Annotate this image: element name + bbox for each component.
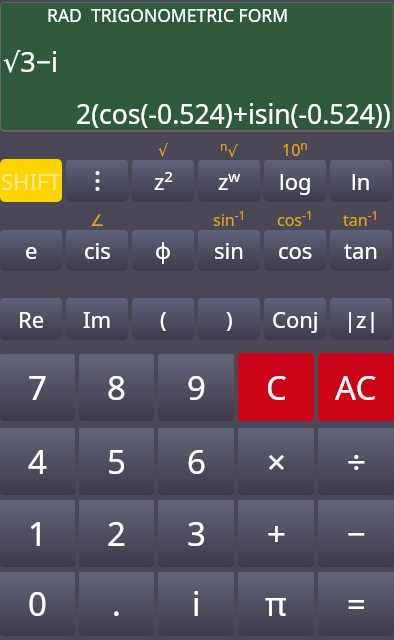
staticText: log <box>279 166 312 196</box>
button[interactable]: 8 <box>79 353 154 421</box>
button[interactable]: ) <box>198 297 260 340</box>
button[interactable]: ( <box>132 297 194 340</box>
staticText: 0 <box>28 581 47 626</box>
staticText: √3−i <box>3 43 59 80</box>
staticText: Im <box>83 304 112 334</box>
staticText: Conj <box>272 304 319 334</box>
staticText: n√ <box>220 138 238 160</box>
button[interactable]: More options <box>66 159 128 202</box>
button[interactable]: = <box>318 571 394 636</box>
button[interactable]: 3 <box>158 499 234 567</box>
button[interactable]: zw <box>198 159 260 202</box>
staticText: 5 <box>107 439 126 484</box>
staticText: sin-1 <box>213 207 246 230</box>
staticText: AC <box>335 365 377 410</box>
staticText: |z| <box>344 304 379 334</box>
staticText: e <box>25 235 38 265</box>
button[interactable]: i <box>158 571 234 636</box>
button[interactable]: z2 <box>132 159 194 202</box>
staticText: C <box>266 365 287 410</box>
button[interactable]: Im <box>66 297 128 340</box>
staticText: ∠ <box>90 211 105 230</box>
button[interactable]: 4 <box>0 427 75 495</box>
staticText: 3 <box>187 511 206 556</box>
button[interactable]: sin <box>198 229 260 271</box>
staticText: √ <box>158 141 169 160</box>
button[interactable]: 5 <box>79 427 154 495</box>
staticText: SHIFT <box>1 166 61 196</box>
staticText: Re <box>18 304 45 334</box>
staticText: ( <box>160 304 167 334</box>
button[interactable]: ÷ <box>318 427 394 495</box>
staticText: ) <box>226 304 233 334</box>
button[interactable]: C <box>238 353 314 421</box>
button[interactable]: cos <box>264 229 326 271</box>
staticText: 2 <box>107 511 126 556</box>
button[interactable]: . <box>79 571 154 636</box>
staticText: zw <box>218 166 241 196</box>
button[interactable]: π <box>238 571 314 636</box>
button[interactable]: + <box>238 499 314 567</box>
button[interactable]: cis <box>66 229 128 271</box>
button[interactable]: φ <box>132 229 194 271</box>
button[interactable]: − <box>318 499 394 567</box>
staticText: π <box>265 581 287 626</box>
staticText: z2 <box>154 166 173 196</box>
staticText: sin <box>214 235 244 265</box>
button[interactable]: 6 <box>158 427 234 495</box>
staticText: cos-1 <box>277 207 313 230</box>
staticText: 7 <box>28 365 47 410</box>
button[interactable]: Conj <box>264 297 326 340</box>
staticText: 2(cos(-0.524)+isin(-0.524)) <box>76 96 391 130</box>
button[interactable]: tan <box>330 229 392 271</box>
staticText: φ <box>155 235 171 265</box>
button[interactable]: |z| <box>330 297 392 340</box>
staticText: 6 <box>187 439 206 484</box>
staticText: − <box>347 511 366 556</box>
staticText: tan-1 <box>343 207 379 230</box>
button[interactable]: e <box>0 229 62 271</box>
staticText: i <box>192 581 201 626</box>
staticText: 1 <box>28 511 47 556</box>
staticText: ÷ <box>347 439 366 484</box>
staticText: = <box>347 581 366 626</box>
button[interactable]: 0 <box>0 571 75 636</box>
staticText: 8 <box>107 365 126 410</box>
button[interactable]: 9 <box>158 353 234 421</box>
button[interactable]: 7 <box>0 353 75 421</box>
staticText: RAD TRIGONOMETRIC FORM <box>47 3 289 27</box>
staticText: tan <box>344 235 378 265</box>
staticText: cis <box>84 235 111 265</box>
button[interactable]: 1 <box>0 499 75 567</box>
button[interactable]: log <box>264 159 326 202</box>
staticText: cos <box>278 235 313 265</box>
staticText: 4 <box>28 439 47 484</box>
staticText: × <box>267 439 286 484</box>
button[interactable]: SHIFT <box>0 159 62 202</box>
staticText: 9 <box>187 365 206 410</box>
staticText: . <box>112 581 121 626</box>
staticText: 10n <box>282 137 308 160</box>
staticText: ln <box>351 166 371 196</box>
button[interactable]: AC <box>318 353 394 421</box>
staticText: + <box>267 511 286 556</box>
button[interactable]: ln <box>330 159 392 202</box>
button[interactable]: Re <box>0 297 62 340</box>
button[interactable]: × <box>238 427 314 495</box>
button[interactable]: 2 <box>79 499 154 567</box>
